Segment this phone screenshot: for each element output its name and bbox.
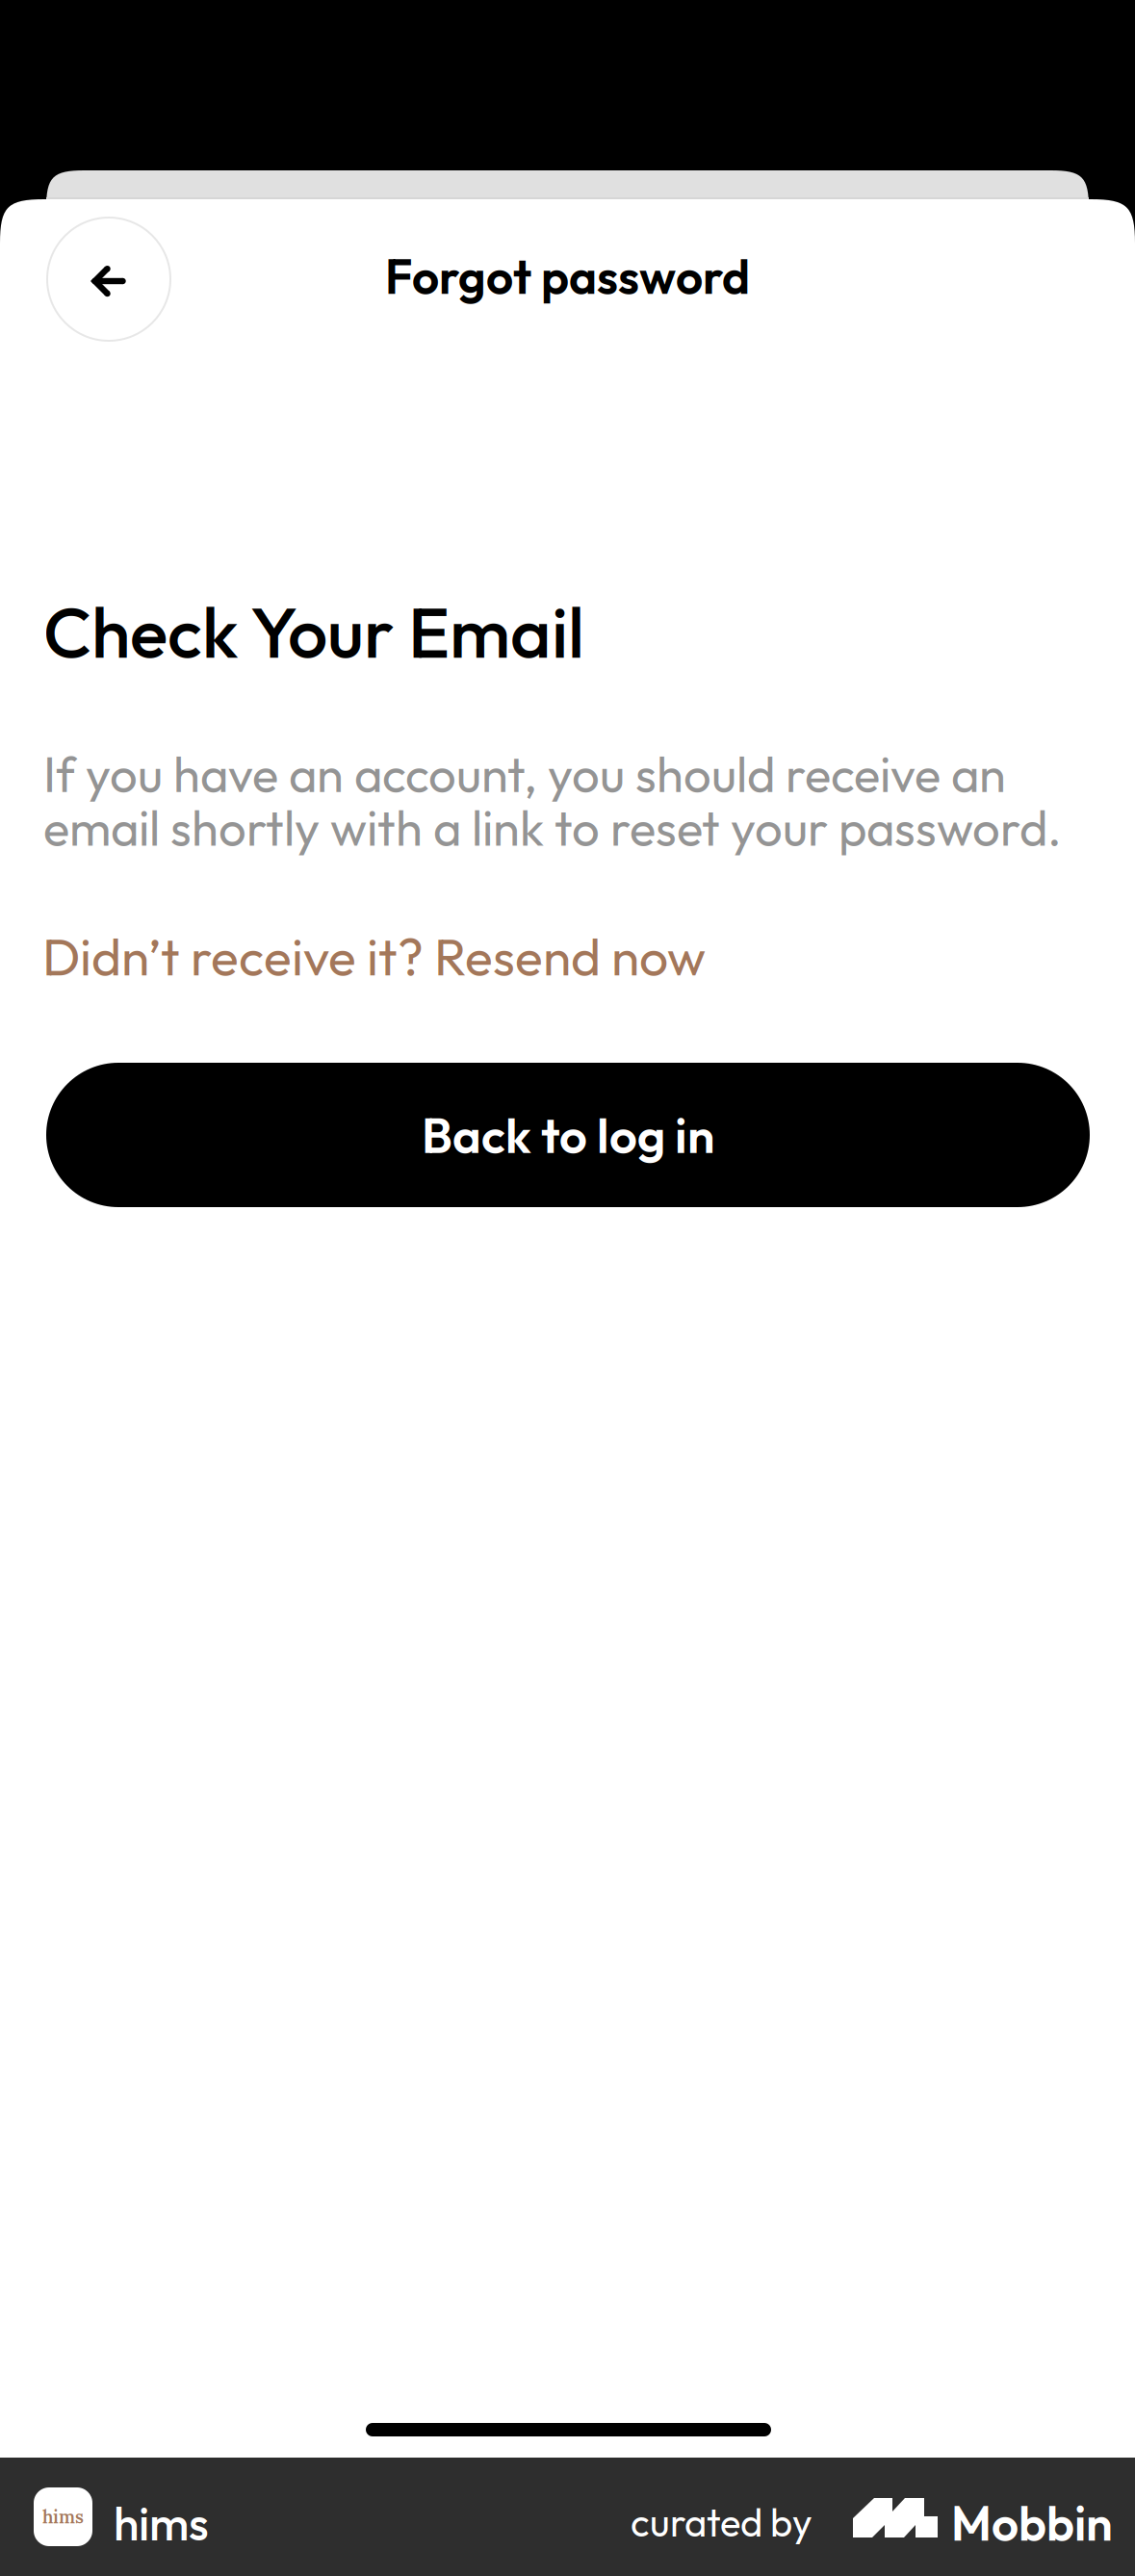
staticText: hims	[114, 2494, 209, 2552]
staticText: curated by	[631, 2498, 813, 2547]
staticText: Mobbin	[951, 2493, 1113, 2553]
staticText: Back to log in	[422, 1104, 714, 1166]
staticText: Forgot password	[385, 246, 750, 306]
staticText: email shortly with a link to reset your …	[43, 797, 1062, 858]
staticText: hims	[42, 2505, 84, 2528]
staticText: Check Your Email	[43, 587, 584, 676]
button[interactable]: Back to log in	[46, 1063, 1090, 1207]
button[interactable]: Back	[47, 218, 170, 341]
button[interactable]: Didn’t receive it? Resend now	[42, 924, 706, 989]
staticText: Didn’t receive it? Resend now	[42, 924, 706, 989]
staticText: If you have an account, you should recei…	[43, 743, 1006, 805]
